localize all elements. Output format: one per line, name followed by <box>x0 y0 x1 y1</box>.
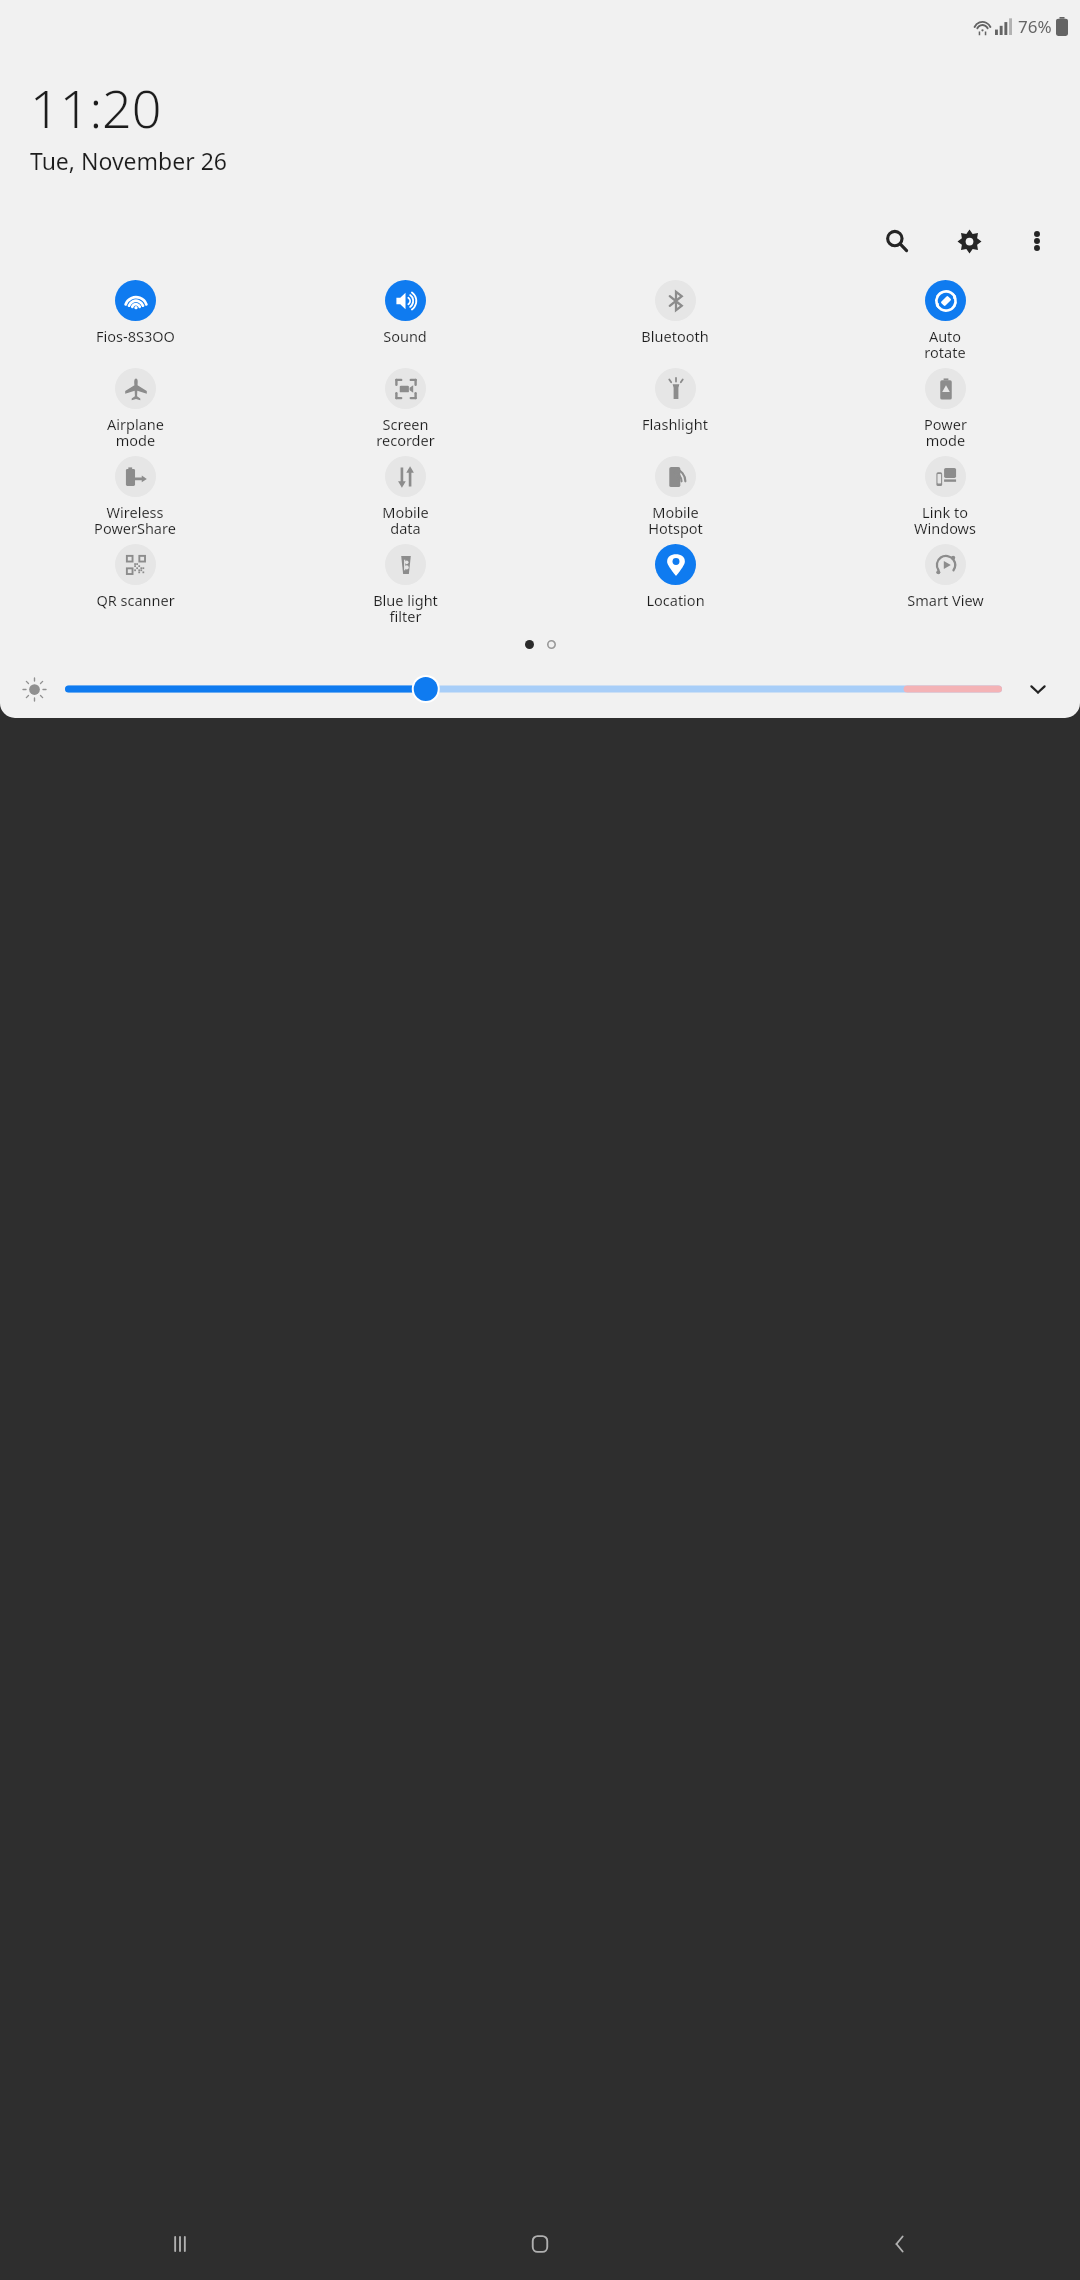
button[interactable]: Wireless PowerShare <box>0 456 270 544</box>
staticText: 11:20 <box>30 72 162 143</box>
staticText: QR scanner <box>96 590 175 610</box>
button[interactable]: Screen recorder <box>270 368 540 456</box>
staticText: Location <box>646 590 705 610</box>
button[interactable]: QR scanner <box>0 544 270 632</box>
staticText: Tue, November 26 <box>30 145 227 176</box>
staticText: Blue light filter <box>373 590 438 627</box>
staticText: Sound <box>383 326 427 346</box>
button[interactable]: Airplane mode <box>0 368 270 456</box>
button[interactable]: Expand brightness <box>1018 669 1058 709</box>
staticText: Screen recorder <box>376 414 435 451</box>
staticText: Smart View <box>907 590 984 610</box>
staticText: Link to Windows <box>914 502 976 539</box>
button[interactable]: Auto rotate <box>810 280 1080 368</box>
button[interactable]: Home <box>360 2208 720 2280</box>
button[interactable]: Blue light filter <box>270 544 540 632</box>
button[interactable]: Smart View <box>810 544 1080 632</box>
staticText: Bluetooth <box>641 326 709 346</box>
button[interactable]: More options <box>1014 218 1060 264</box>
button[interactable]: Power mode <box>810 368 1080 456</box>
button[interactable]: Mobile data <box>270 456 540 544</box>
button[interactable]: Recents <box>0 2208 360 2280</box>
staticText: Mobile Hotspot <box>648 502 703 539</box>
button[interactable]: Mobile Hotspot <box>540 456 810 544</box>
staticText: Fios-8S3OO <box>96 326 175 346</box>
button[interactable]: Link to Windows <box>810 456 1080 544</box>
button[interactable]: Fios-8S3OO <box>0 280 270 368</box>
button[interactable]: Sound <box>270 280 540 368</box>
button[interactable]: Brightness <box>65 669 1002 709</box>
button[interactable]: Bluetooth <box>540 280 810 368</box>
staticText: Wireless PowerShare <box>94 502 176 539</box>
staticText: Airplane mode <box>107 414 164 451</box>
button[interactable]: Settings <box>946 218 992 264</box>
staticText: Power mode <box>924 414 967 451</box>
button[interactable]: Search <box>874 218 920 264</box>
button[interactable]: Back <box>720 2208 1080 2280</box>
button[interactable]: Location <box>540 544 810 632</box>
staticText: Flashlight <box>642 414 708 434</box>
button[interactable]: Flashlight <box>540 368 810 456</box>
staticText: 76% <box>1018 15 1052 38</box>
staticText: Mobile data <box>382 502 429 539</box>
staticText: Auto rotate <box>924 326 966 363</box>
